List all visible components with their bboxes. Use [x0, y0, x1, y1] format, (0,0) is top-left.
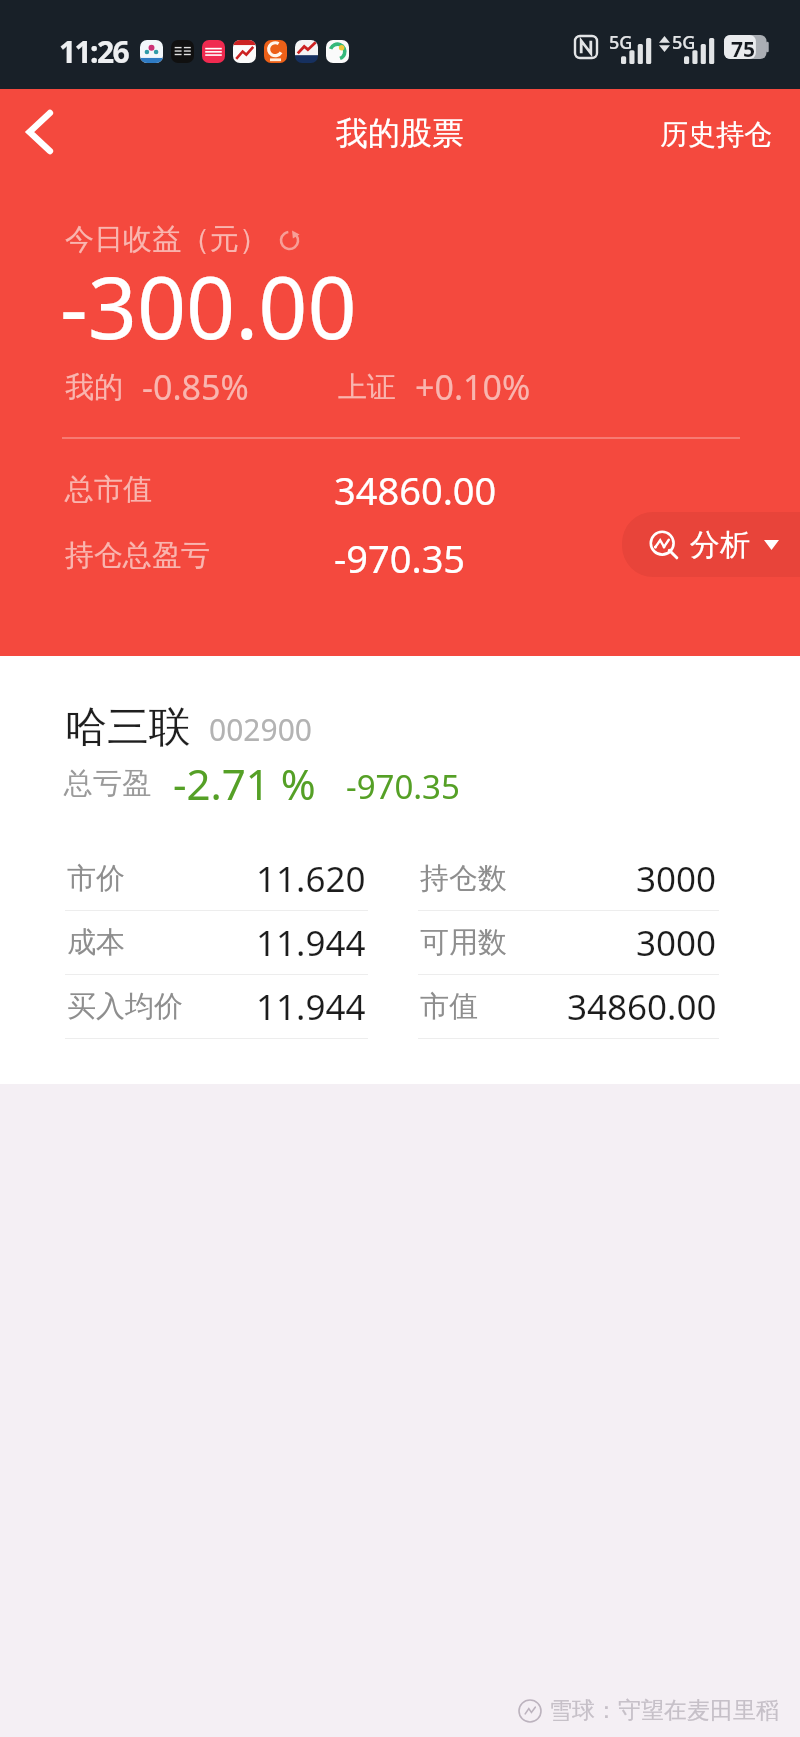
staticText: 成本: [67, 924, 125, 961]
staticText: 哈三联: [65, 701, 191, 754]
staticText: 市值: [420, 988, 478, 1025]
staticText: 5G: [609, 30, 633, 55]
button[interactable]: Refresh: [276, 227, 302, 253]
staticText: 市价: [67, 860, 125, 897]
staticText: 002900: [209, 709, 312, 750]
staticText: 雪球：守望在麦田里稻: [549, 1696, 779, 1725]
staticText: 34860.00: [567, 983, 717, 1031]
button[interactable]: 历史持仓: [630, 101, 800, 168]
staticText: -300.00: [60, 247, 357, 364]
staticText: 11.944: [256, 983, 366, 1031]
staticText: 买入均价: [67, 988, 183, 1025]
staticText: 可用数: [420, 924, 507, 961]
staticText: 我的: [65, 369, 123, 406]
staticText: -970.35: [346, 764, 460, 809]
staticText: 持仓数: [420, 860, 507, 897]
staticText: 今日收益（元）: [65, 221, 268, 258]
button[interactable]: Back: [8, 100, 72, 164]
button[interactable]: 分析 Analysis: [622, 512, 800, 577]
staticText: -2.71 %: [173, 755, 316, 812]
staticText: 11.944: [256, 919, 366, 967]
staticText: 3000: [636, 855, 717, 903]
staticText: 持仓总盈亏: [65, 537, 210, 574]
staticText: 75: [731, 35, 756, 59]
staticText: 历史持仓: [660, 117, 772, 152]
staticText: 3000: [636, 919, 717, 967]
staticText: -0.85%: [142, 364, 249, 410]
staticText: 34860.00: [334, 464, 497, 516]
staticText: 上证: [338, 369, 396, 406]
staticText: 11:26: [59, 31, 129, 72]
button[interactable]: 哈三联: [0, 656, 800, 1084]
staticText: -970.35: [334, 532, 466, 584]
staticText: 总亏盈: [64, 765, 151, 802]
staticText: 总市值: [65, 471, 152, 508]
staticText: +0.10%: [415, 364, 531, 410]
staticText: 分析: [690, 526, 750, 564]
staticText: 11.620: [256, 855, 366, 903]
staticText: 5G: [672, 30, 696, 55]
staticText: 我的股票: [336, 113, 464, 153]
